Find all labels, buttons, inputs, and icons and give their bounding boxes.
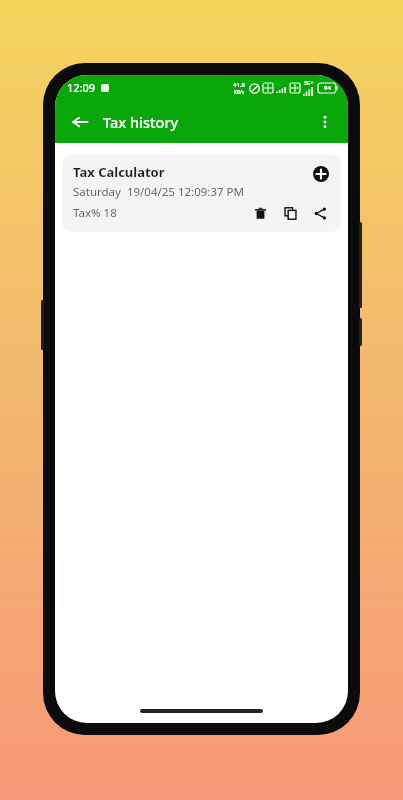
button[interactable]: Copy [279,202,301,224]
staticText: 94 [324,84,331,92]
staticText: KB/s [234,89,245,95]
button[interactable]: Tax Calculator [62,155,341,232]
staticText: 12:09 [67,80,96,95]
staticText: 41.8 [233,81,245,89]
staticText: 5G+ [304,80,314,87]
staticText: Saturday 19/04/25 12:09:37 PM [73,184,244,200]
button[interactable]: Delete [249,202,271,224]
button[interactable]: Add [310,163,332,185]
staticText: Tax% 18 [73,205,117,221]
button[interactable]: Back [63,105,97,139]
staticText: Tax Calculator [73,163,165,181]
button[interactable]: Share [309,202,331,224]
button[interactable]: More options [308,105,342,139]
staticText: Tax history [103,112,179,132]
